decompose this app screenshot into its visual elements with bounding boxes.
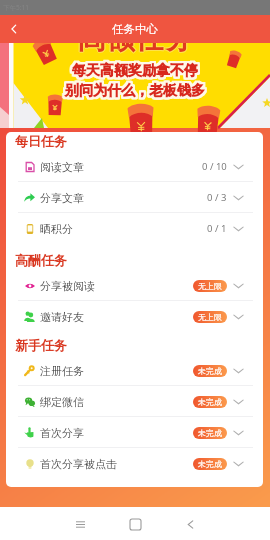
staticText: 每天高额奖励拿不停 — [74, 63, 200, 81]
staticText: 高额任务 — [77, 43, 193, 58]
staticText: 别问为什么，老板钱多 — [64, 80, 204, 98]
staticText: 未完成 — [198, 397, 222, 407]
staticText: 注册任务 — [40, 364, 84, 378]
staticText: 每天高额奖励拿不停 — [72, 61, 198, 79]
staticText: 未完成 — [198, 428, 222, 438]
button[interactable]: 邀请好友 — [6, 301, 263, 332]
staticText: 每天高额奖励拿不停 — [73, 61, 199, 79]
button[interactable]: 首次分享被点击 — [6, 448, 263, 479]
staticText: 无上限 — [198, 281, 222, 291]
staticText: 别问为什么，老板钱多 — [66, 82, 206, 100]
staticText: 晒积分 — [40, 222, 73, 236]
button[interactable]: Home — [120, 509, 150, 539]
staticText: 每天高额奖励拿不停 — [74, 62, 200, 80]
button[interactable]: 晒积分 — [6, 213, 263, 244]
button[interactable]: 分享被阅读 — [6, 270, 263, 301]
staticText: 每天高额奖励拿不停 — [70, 64, 196, 82]
staticText: 0 / 3 — [207, 191, 227, 204]
staticText: 别问为什么，老板钱多 — [63, 84, 203, 102]
staticText: 每天高额奖励拿不停 — [71, 61, 197, 79]
staticText: 别问为什么，老板钱多 — [66, 81, 206, 99]
button[interactable]: 分享文章 — [6, 182, 263, 213]
staticText: 分享被阅读 — [40, 279, 95, 293]
staticText: 每天高额奖励拿不停 — [73, 62, 199, 80]
staticText: 首次分享被点击 — [40, 457, 117, 471]
staticText: 别问为什么，老板钱多 — [64, 84, 204, 102]
staticText: 首次分享 — [40, 426, 84, 440]
staticText: 绑定微信 — [40, 395, 84, 409]
staticText: 每天高额奖励拿不停 — [70, 60, 196, 78]
staticText: 分享文章 — [40, 191, 84, 205]
staticText: 别问为什么，老板钱多 — [64, 82, 204, 100]
staticText: 每天高额奖励拿不停 — [71, 64, 197, 82]
staticText: 别问为什么，老板钱多 — [65, 82, 205, 100]
staticText: 新手任务 — [15, 337, 67, 353]
staticText: 别问为什么，老板钱多 — [65, 84, 205, 102]
staticText: 每天高额奖励拿不停 — [72, 60, 198, 78]
staticText: 每天高额奖励拿不停 — [74, 61, 200, 79]
staticText: 高额任务 — [76, 43, 192, 57]
staticText: 每天高额奖励拿不停 — [74, 64, 200, 82]
staticText: 别问为什么，老板钱多 — [67, 82, 207, 100]
staticText: 每天高额奖励拿不停 — [73, 64, 199, 82]
staticText: 阅读文章 — [40, 160, 84, 174]
staticText: 高酬任务 — [15, 252, 67, 268]
button[interactable]: Back — [175, 509, 205, 539]
button[interactable]: Recent apps — [65, 509, 95, 539]
staticText: 别问为什么，老板钱多 — [64, 81, 204, 99]
staticText: 每天高额奖励拿不停 — [74, 60, 200, 78]
staticText: 高额任务 — [77, 43, 193, 56]
staticText: 每天高额奖励拿不停 — [71, 60, 197, 78]
staticText: 别问为什么，老板钱多 — [63, 82, 203, 100]
staticText: 每天高额奖励拿不停 — [72, 62, 198, 80]
button[interactable]: Back — [0, 15, 28, 43]
staticText: 别问为什么，老板钱多 — [66, 84, 206, 102]
staticText: 别问为什么，老板钱多 — [67, 80, 207, 98]
staticText: 别问为什么，老板钱多 — [65, 80, 205, 98]
staticText: 每天高额奖励拿不停 — [70, 62, 196, 80]
staticText: 每天高额奖励拿不停 — [70, 61, 196, 79]
staticText: 每天高额奖励拿不停 — [73, 60, 199, 78]
staticText: 别问为什么，老板钱多 — [65, 83, 205, 101]
staticText: 0 / 1 — [207, 222, 227, 235]
staticText: 别问为什么，老板钱多 — [67, 81, 207, 99]
staticText: 别问为什么，老板钱多 — [67, 83, 207, 101]
staticText: 无上限 — [198, 312, 222, 322]
staticText: 别问为什么，老板钱多 — [66, 80, 206, 98]
staticText: 高额任务 — [78, 43, 194, 57]
staticText: 别问为什么，老板钱多 — [63, 83, 203, 101]
button[interactable]: 绑定微信 — [6, 386, 263, 417]
staticText: 每天高额奖励拿不停 — [72, 63, 198, 81]
staticText: 别问为什么，老板钱多 — [66, 83, 206, 101]
button[interactable]: 首次分享 — [6, 417, 263, 448]
staticText: 每天高额奖励拿不停 — [73, 63, 199, 81]
staticText: 每天高额奖励拿不停 — [72, 64, 198, 82]
staticText: 0 / 10 — [202, 160, 227, 173]
staticText: 别问为什么，老板钱多 — [63, 81, 203, 99]
staticText: 每天高额奖励拿不停 — [71, 63, 197, 81]
staticText: 别问为什么，老板钱多 — [65, 81, 205, 99]
staticText: 任务中心 — [112, 22, 158, 36]
staticText: 未完成 — [198, 459, 222, 469]
staticText: 别问为什么，老板钱多 — [64, 83, 204, 101]
staticText: 高额任务 — [77, 43, 193, 57]
staticText: 未完成 — [198, 366, 222, 376]
button[interactable]: 阅读文章 — [6, 151, 263, 182]
staticText: 每天高额奖励拿不停 — [71, 62, 197, 80]
staticText: 邀请好友 — [40, 310, 84, 324]
staticText: 每天高额奖励拿不停 — [70, 63, 196, 81]
staticText: 每日任务 — [15, 133, 67, 149]
staticText: 别问为什么，老板钱多 — [63, 80, 203, 98]
staticText: 别问为什么，老板钱多 — [67, 84, 207, 102]
button[interactable]: 注册任务 — [6, 355, 263, 386]
